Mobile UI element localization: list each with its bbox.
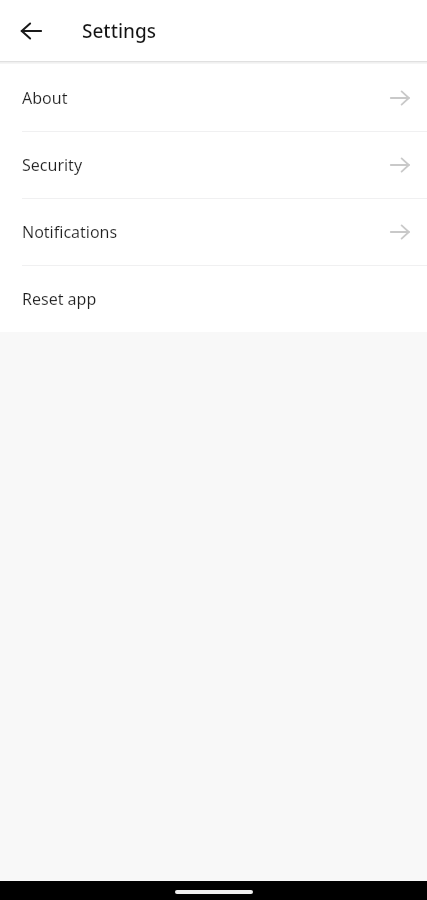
staticText: Security: [22, 154, 83, 176]
button[interactable]: Reset app: [0, 266, 427, 332]
staticText: About: [22, 87, 68, 109]
staticText: Notifications: [22, 221, 118, 243]
button[interactable]: Back: [7, 7, 55, 55]
button[interactable]: About: [0, 64, 427, 131]
staticText: Settings: [82, 18, 156, 44]
staticText: Reset app: [22, 288, 97, 310]
button[interactable]: Notifications: [0, 199, 427, 265]
button[interactable]: Security: [0, 132, 427, 198]
